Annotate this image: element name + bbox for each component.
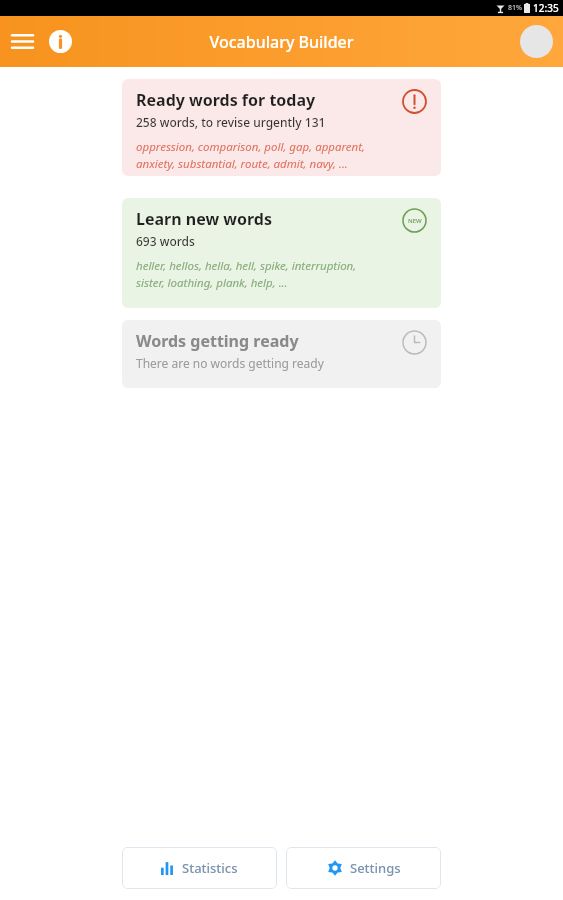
staticText: Learn new words [136,208,272,230]
staticText: Words getting ready [136,330,299,352]
button[interactable]: Information [45,26,76,57]
staticText: Settings [350,859,401,877]
button[interactable]: Statistics [122,847,277,889]
staticText: oppression, comparison, poll, gap, appar… [136,139,366,155]
staticText: There are no words getting ready [136,355,324,371]
staticText: heller, hellos, hella, hell, spike, inte… [136,258,357,274]
button[interactable]: Words getting ready [122,320,441,388]
staticText: sister, loathing, plank, help, ... [136,275,288,291]
button[interactable]: Learn new words [122,198,441,308]
staticText: Vocabulary Builder [209,31,354,53]
staticText: Statistics [182,859,238,877]
button[interactable]: Settings [286,847,441,889]
staticText: 81% [508,3,522,13]
staticText: NEW [408,217,422,225]
button[interactable]: Ready words for today [122,79,441,176]
staticText: anxiety, substantial, route, admit, navy… [136,156,348,172]
button[interactable]: Profile [520,25,553,58]
staticText: 693 words [136,233,195,249]
button[interactable]: Open navigation menu [0,22,45,61]
staticText: Ready words for today [136,89,316,111]
staticText: 12:35 [533,1,559,15]
staticText: 258 words, to revise urgently 131 [136,114,326,130]
